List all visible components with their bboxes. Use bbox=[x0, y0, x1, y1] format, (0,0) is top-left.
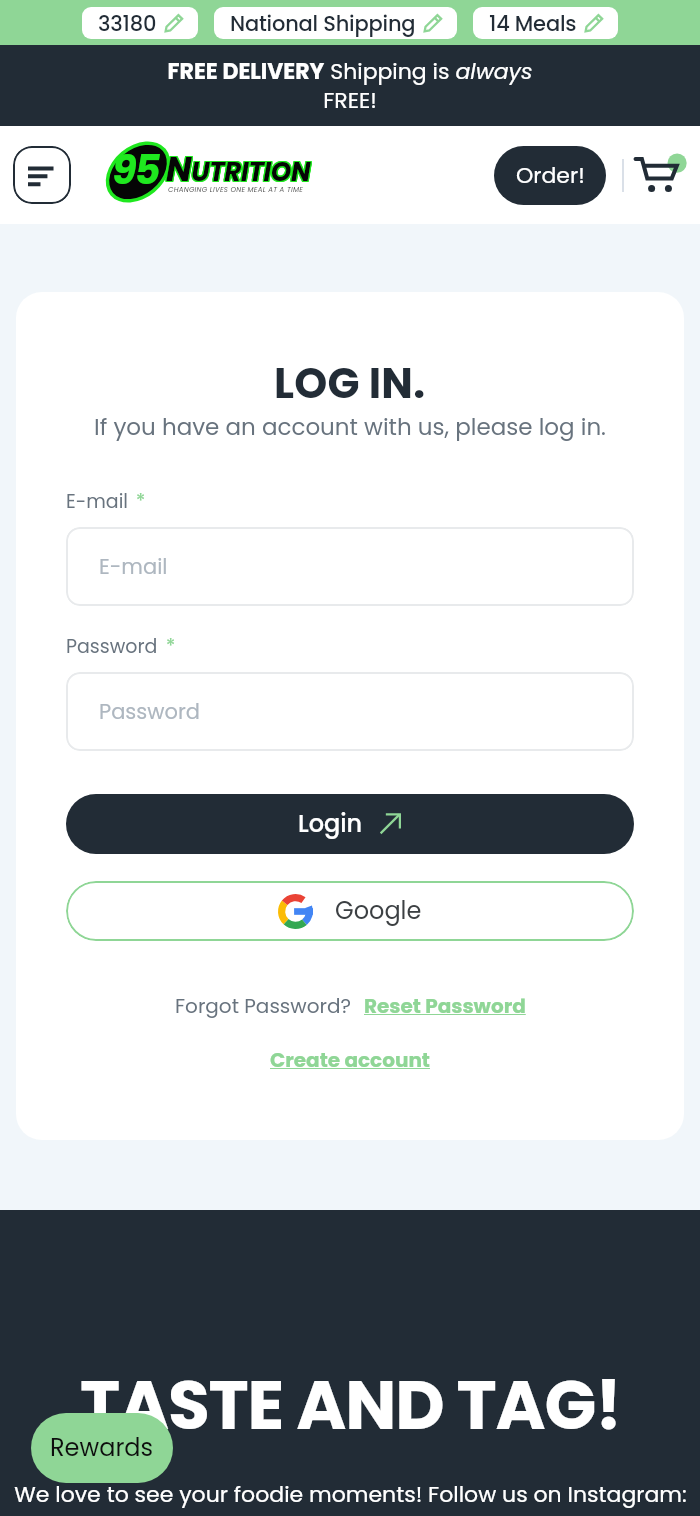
staticText: National Shipping bbox=[230, 9, 416, 38]
staticText: Password bbox=[99, 697, 200, 726]
staticText: Create account bbox=[270, 1046, 430, 1074]
staticText: 33180 bbox=[98, 9, 157, 38]
staticText: NUTRITION bbox=[167, 144, 312, 192]
button[interactable]: E-mail bbox=[66, 527, 634, 606]
staticText: NUTRITION bbox=[166, 144, 311, 192]
staticText: NUTRITION bbox=[165, 146, 310, 194]
staticText: LOG IN. bbox=[274, 354, 426, 413]
staticText: * bbox=[136, 488, 146, 515]
staticText: Password bbox=[66, 633, 158, 660]
staticText: NUTRITION bbox=[167, 146, 312, 194]
staticText: E-mail bbox=[99, 552, 168, 581]
staticText: We love to see your foodie moments! Foll… bbox=[14, 1479, 687, 1510]
staticText: NUTRITION bbox=[167, 145, 312, 193]
staticText: Login bbox=[298, 807, 363, 841]
staticText: Order! bbox=[516, 160, 585, 191]
staticText: NUTRITION bbox=[166, 146, 311, 194]
button[interactable]: Google bbox=[66, 881, 634, 941]
staticText: If you have an account with us, please l… bbox=[94, 411, 606, 443]
staticText: * bbox=[166, 633, 176, 660]
staticText: NUTRITION bbox=[166, 145, 311, 193]
button[interactable]: Shopping cart bbox=[630, 146, 688, 204]
button[interactable]: Password bbox=[66, 672, 634, 751]
button[interactable]: 33180 bbox=[82, 7, 198, 39]
staticText: Google bbox=[335, 894, 422, 928]
button[interactable]: Order! bbox=[494, 146, 606, 205]
staticText: Reset Password bbox=[364, 992, 526, 1020]
button[interactable]: Menu bbox=[13, 146, 71, 204]
button[interactable]: Login bbox=[66, 794, 634, 854]
staticText: NUTRITION bbox=[165, 144, 310, 192]
staticText: 14 Meals bbox=[489, 9, 577, 38]
staticText: FREE DELIVERY Shipping is always FREE! bbox=[162, 56, 538, 115]
staticText: Rewards bbox=[50, 1431, 154, 1465]
button[interactable]: National Shipping bbox=[214, 7, 457, 39]
staticText: CHANGING LIVES ONE MEAL AT A TIME bbox=[168, 185, 304, 195]
button[interactable]: Rewards bbox=[31, 1413, 173, 1483]
staticText: TASTE AND TAG! bbox=[80, 1358, 621, 1453]
button[interactable]: Reset Password bbox=[364, 992, 526, 1020]
staticText: Forgot Password? bbox=[175, 992, 351, 1020]
staticText: E-mail bbox=[66, 488, 128, 515]
button[interactable]: Create account bbox=[270, 1046, 430, 1074]
button[interactable]: 14 Meals bbox=[473, 7, 618, 39]
staticText: 95 bbox=[112, 142, 159, 198]
staticText: NUTRITION bbox=[165, 145, 310, 193]
